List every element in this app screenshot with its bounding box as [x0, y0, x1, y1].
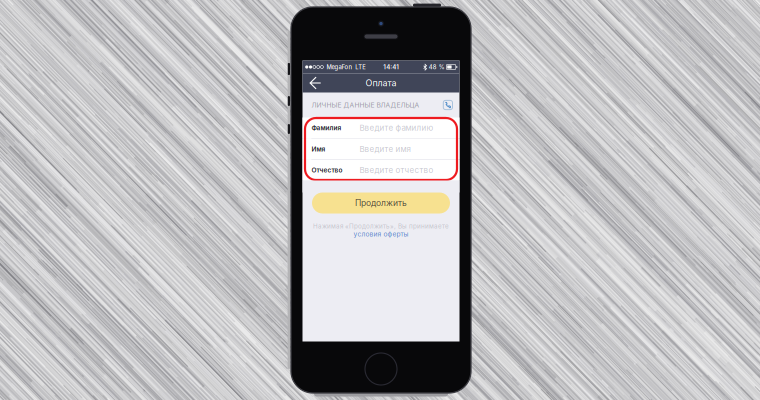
button[interactable]: Фамилия [302, 117, 459, 138]
staticText: Введите отчество [359, 165, 433, 175]
staticText: Отчество [311, 166, 342, 174]
button[interactable]: Имя [302, 139, 459, 159]
staticText: ЛИЧНЫЕ ДАННЫЕ ВЛАДЕЛЬЦА [311, 101, 419, 109]
staticText: Имя [311, 145, 325, 153]
button[interactable]: Продолжить [312, 192, 450, 213]
button[interactable]: Back [307, 73, 327, 92]
staticText: 48 % [429, 63, 445, 71]
staticText: LTE [355, 63, 366, 71]
staticText: условия оферты [353, 230, 408, 238]
staticText: 14:41 [383, 63, 399, 71]
button[interactable]: Choose from contacts [443, 100, 452, 110]
staticText: Введите фамилию [359, 123, 433, 133]
staticText: Введите имя [359, 144, 410, 154]
staticText: MegaFon [327, 63, 353, 71]
staticText: Фамилия [311, 124, 341, 132]
button[interactable]: условия оферты [353, 230, 408, 238]
staticText: Оплата [365, 78, 396, 88]
staticText: Нажимая «Продолжить», Вы принимаете [313, 222, 449, 230]
staticText: Продолжить [355, 198, 407, 208]
button[interactable]: Отчество [302, 160, 459, 180]
